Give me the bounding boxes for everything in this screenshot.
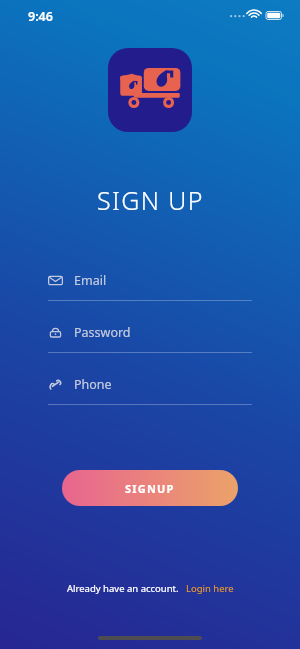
staticText: Phone	[74, 376, 112, 393]
staticText: SIGNUP	[125, 481, 175, 496]
button[interactable]: SIGNUP	[62, 470, 238, 506]
staticText: 9:46	[28, 8, 53, 25]
button[interactable]: Login here	[186, 582, 234, 595]
staticText: Email	[74, 272, 107, 289]
staticText: Password	[74, 324, 131, 341]
staticText: Login here	[186, 582, 234, 595]
other: Phone	[48, 377, 63, 392]
staticText: Already have an account.	[67, 582, 179, 595]
button[interactable]: Password	[48, 318, 252, 353]
button[interactable]: Phone	[48, 370, 252, 405]
staticText: SIGN UP	[97, 183, 204, 217]
button[interactable]: Email	[48, 266, 252, 301]
other: Email	[48, 273, 63, 288]
other: Password	[48, 325, 63, 340]
